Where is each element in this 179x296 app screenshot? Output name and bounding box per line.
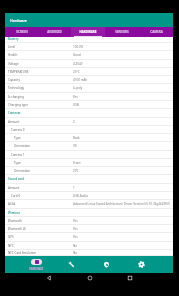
staticText: Wireless: [8, 211, 21, 215]
staticText: Hardware: [10, 18, 27, 23]
button[interactable]: Home: [84, 273, 96, 283]
button[interactable]: Recents: [124, 273, 136, 283]
staticText: Yes: [73, 95, 78, 99]
staticText: ANDROID: [47, 30, 62, 34]
button[interactable]: Orientation: [5, 167, 173, 175]
staticText: No: [73, 251, 78, 255]
staticText: 1: [73, 186, 75, 190]
staticText: 2: [73, 120, 75, 124]
staticText: Yes: [73, 235, 78, 239]
staticText: NFC: [8, 244, 14, 248]
button[interactable]: Voltage: [5, 60, 173, 68]
staticText: Li-poly: [73, 86, 83, 90]
staticText: Bluetooth LE: [8, 227, 26, 231]
staticText: USB-Audio: [73, 194, 88, 198]
staticText: HARDWARE: [29, 267, 44, 271]
button[interactable]: ANDROID: [38, 27, 71, 37]
staticText: CAMERA: [150, 30, 163, 34]
button[interactable]: Security: [89, 256, 124, 273]
staticText: No: [73, 244, 78, 248]
staticText: 23°C: [73, 70, 80, 74]
staticText: Yes: [73, 219, 78, 223]
staticText: Front: [73, 161, 81, 165]
button[interactable]: HARDWARE: [18, 256, 54, 273]
button[interactable]: TEMPERATURE: [5, 68, 173, 76]
button[interactable]: Type: [5, 159, 173, 167]
button[interactable]: Hardware: [5, 13, 173, 27]
button[interactable]: NFC Card Emulation: [5, 250, 173, 256]
button[interactable]: Bluetooth: [5, 217, 173, 225]
button[interactable]: Camera 0: [5, 126, 173, 134]
button[interactable]: Settings: [124, 256, 159, 273]
button[interactable]: CAMERA: [139, 27, 173, 37]
staticText: 90: [73, 144, 77, 148]
button[interactable]: Charging type: [5, 101, 173, 109]
staticText: Yes: [73, 227, 78, 231]
button[interactable]: Amount: [5, 184, 173, 192]
staticText: Camera 0: [11, 128, 25, 132]
staticText: Amount: [8, 120, 20, 124]
staticText: USB: [73, 103, 79, 107]
button[interactable]: ALSA: [5, 200, 173, 209]
staticText: SCREEN: [16, 30, 28, 34]
button[interactable]: Bluetooth LE: [5, 225, 173, 233]
staticText: NFC Card Emulation: [8, 251, 37, 255]
button[interactable]: Camera 1: [5, 151, 173, 159]
button[interactable]: Card 0: [5, 192, 173, 200]
staticText: Amount: [8, 186, 20, 190]
staticText: Level: [8, 45, 16, 49]
staticText: Camera 1: [11, 153, 25, 157]
staticText: Sound card: [8, 177, 25, 181]
staticText: Voltage: [8, 62, 19, 66]
staticText: Bluetooth: [8, 219, 22, 223]
staticText: Is charging: [8, 95, 24, 99]
staticText: Orientation: [14, 144, 31, 148]
staticText: GPS: [8, 235, 14, 239]
staticText: Capacity: [8, 78, 20, 82]
staticText: Cameras: [8, 111, 21, 115]
staticText: HARDWARE: [79, 30, 97, 34]
staticText: ALSA: [8, 202, 16, 206]
button[interactable]: Capacity: [5, 76, 173, 84]
staticText: Back: [73, 136, 80, 140]
staticText: 4.254V: [73, 62, 83, 66]
button[interactable]: NFC: [5, 242, 173, 250]
staticText: Type: [14, 136, 21, 140]
button[interactable]: Health: [5, 51, 173, 60]
button[interactable]: Orientation: [5, 142, 173, 151]
staticText: Good: [73, 53, 81, 57]
button[interactable]: Technology: [5, 84, 173, 93]
staticText: Technology: [8, 86, 25, 90]
button[interactable]: Level: [5, 43, 173, 51]
staticText: Health: [8, 53, 18, 57]
button[interactable]: GPS: [5, 233, 173, 242]
button[interactable]: Tools: [54, 256, 89, 273]
staticText: Type: [14, 161, 21, 165]
staticText: Charging type: [8, 103, 28, 107]
staticText: 4100 mAh: [73, 78, 88, 82]
button[interactable]: Is charging: [5, 93, 173, 101]
staticText: Card 0: [11, 194, 21, 198]
staticText: TEMPERATURE: [8, 70, 29, 74]
staticText: Battery: [8, 37, 19, 41]
staticText: 100.0%: [73, 45, 84, 49]
button[interactable]: HARDWARE: [71, 27, 105, 37]
staticText: Advanced Linux Sound Architecture Driver…: [73, 202, 170, 206]
staticText: 270: [73, 169, 79, 173]
button[interactable]: SENSORS: [105, 27, 139, 37]
button[interactable]: SCREEN: [5, 27, 38, 37]
button[interactable]: Type: [5, 134, 173, 142]
button[interactable]: Back: [43, 273, 55, 283]
staticText: SENSORS: [115, 30, 129, 34]
button[interactable]: Amount: [5, 118, 173, 126]
staticText: Orientation: [14, 169, 31, 173]
